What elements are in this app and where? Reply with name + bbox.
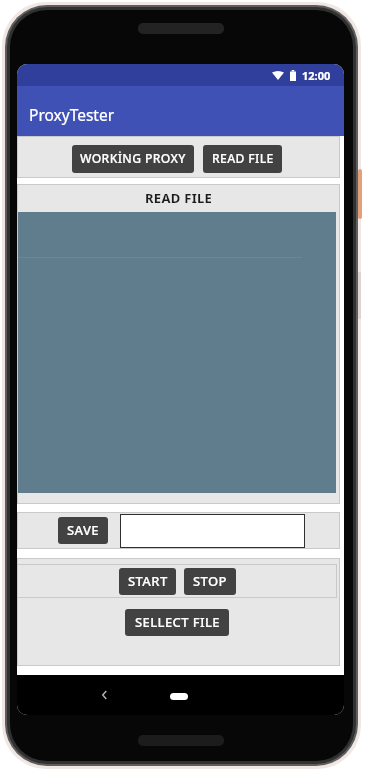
button[interactable]: READ FILE	[203, 145, 282, 173]
staticText: SAVE	[67, 521, 99, 539]
button[interactable]: SELLECT FILE	[125, 609, 229, 636]
button[interactable]: START	[119, 568, 176, 595]
button[interactable]: SAVE	[58, 517, 108, 544]
staticText: ProxyTester	[29, 104, 115, 125]
staticText: WORKİNG PROXY	[80, 150, 186, 167]
other: Home	[170, 693, 188, 700]
button[interactable]: WORKİNG PROXY	[72, 145, 194, 173]
staticText: START	[128, 572, 168, 590]
staticText: READ FILE	[212, 150, 274, 167]
button[interactable]: STOP	[184, 568, 236, 595]
staticText: 12:00	[302, 68, 331, 83]
other: Back	[102, 691, 107, 699]
staticText: STOP	[193, 572, 227, 590]
staticText: SELLECT FILE	[135, 613, 220, 631]
staticText: READ FILE	[145, 189, 213, 207]
